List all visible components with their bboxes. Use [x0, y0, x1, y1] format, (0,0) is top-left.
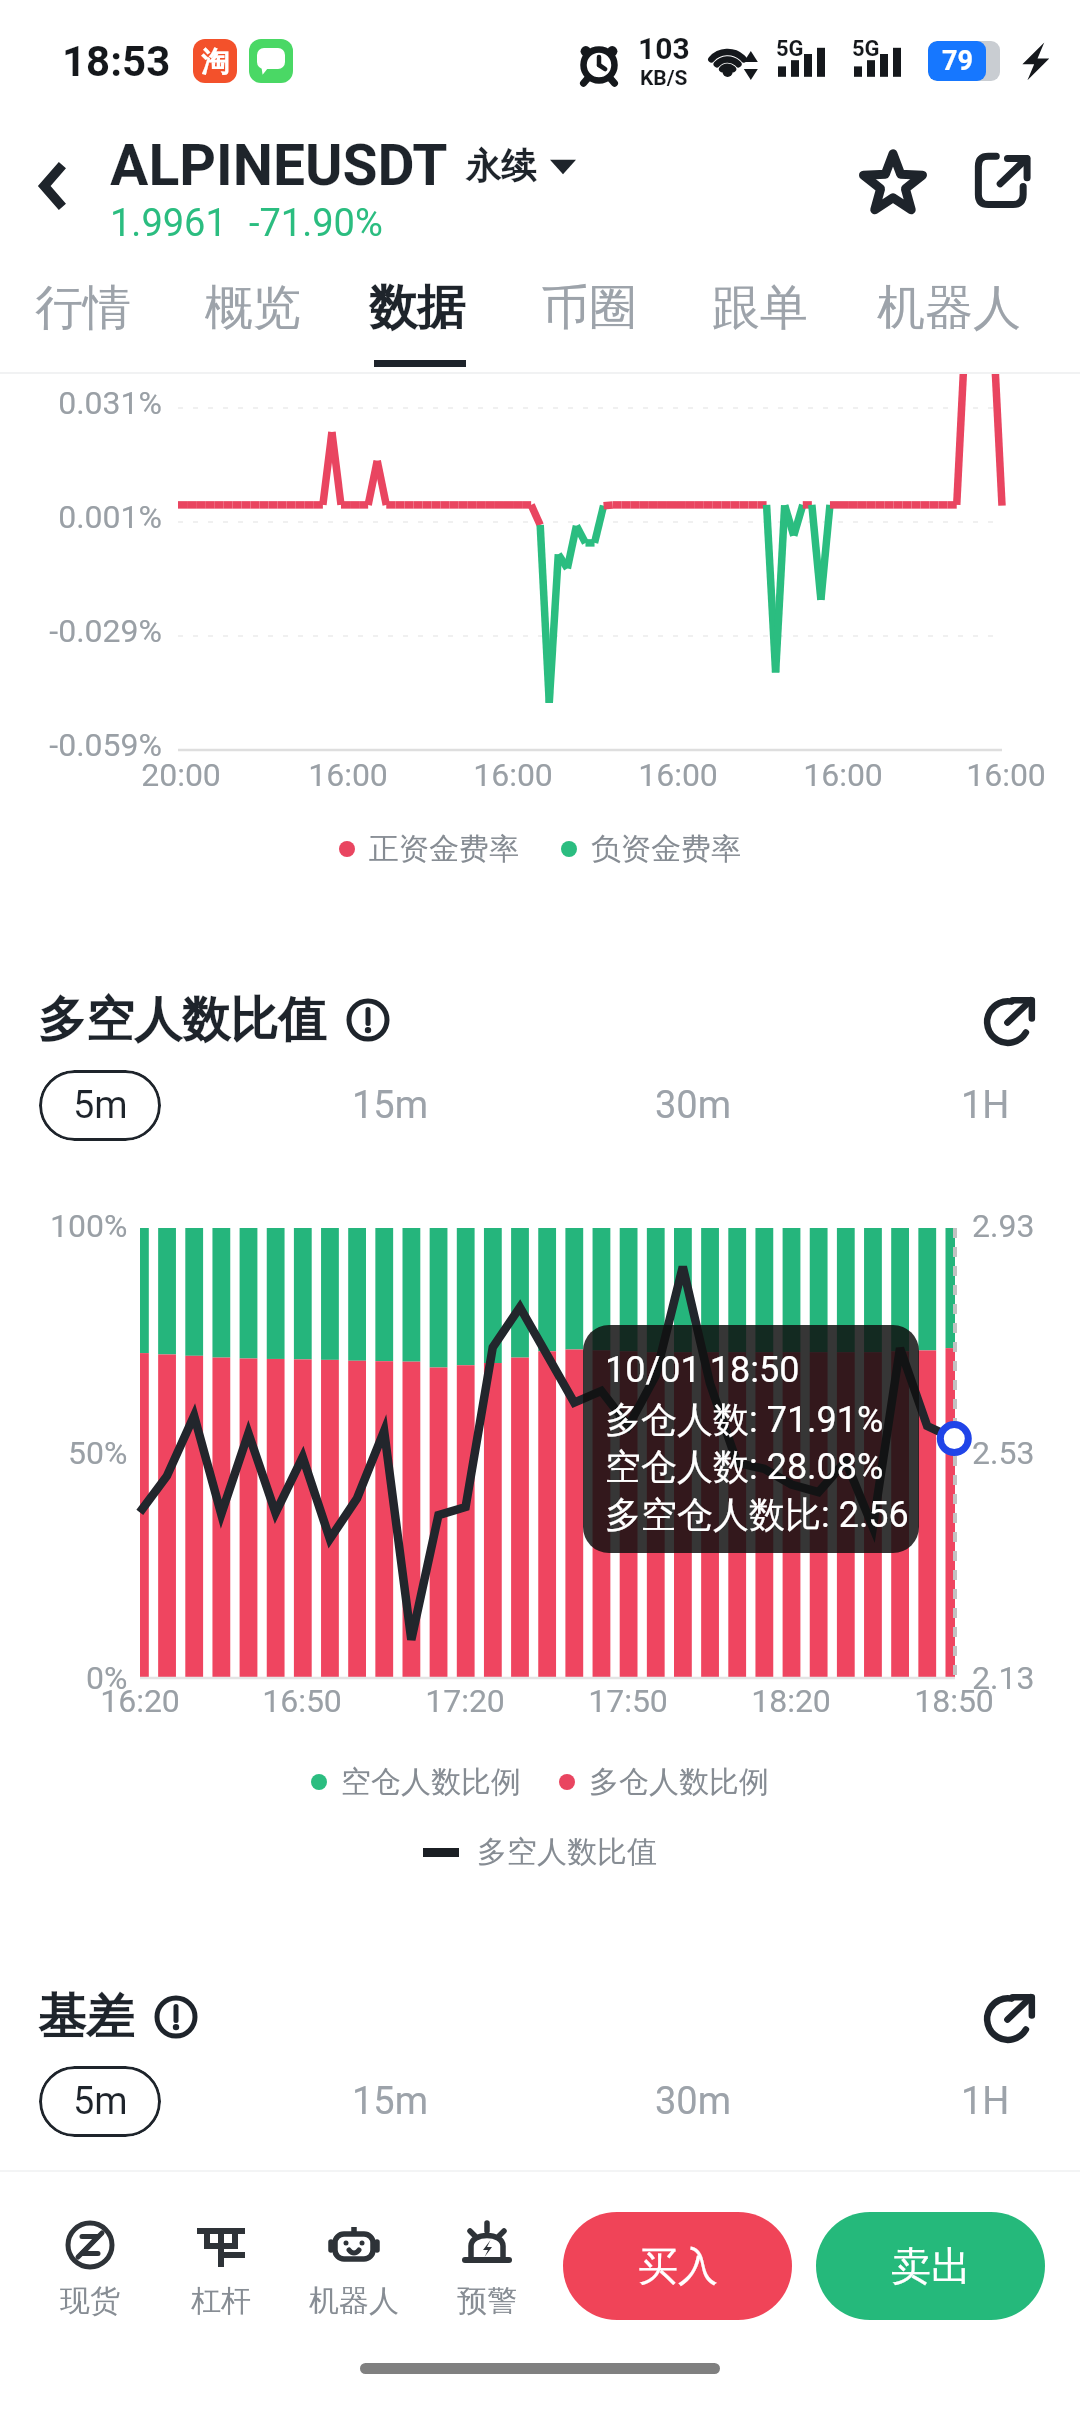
staticText: 多空仓人数比: 2.56 — [605, 1492, 909, 1537]
staticText: 概览 — [205, 278, 301, 338]
button[interactable]: 1H — [915, 1070, 1055, 1141]
button[interactable]: 1H — [915, 2066, 1055, 2137]
button[interactable]: 30m — [613, 2066, 773, 2137]
staticText: 淘 — [201, 44, 229, 79]
staticText: 5m — [73, 2079, 128, 2124]
staticText: 2.13 — [972, 1659, 1035, 1697]
button[interactable]: 卖出 — [816, 2212, 1045, 2320]
staticText: 16:50 — [262, 1682, 342, 1720]
staticText: 20:00 — [141, 756, 221, 794]
staticText: ALPINEUSDT — [110, 132, 448, 199]
button[interactable]: 5m — [39, 2066, 161, 2137]
staticText: 18:20 — [751, 1682, 831, 1720]
staticText: 17:50 — [588, 1682, 668, 1720]
button[interactable]: 机器人 — [284, 2220, 424, 2320]
button[interactable]: 币圈 — [533, 278, 645, 372]
staticText: 买入 — [638, 2241, 718, 2291]
staticText: 行情 — [35, 278, 131, 338]
staticText: 机器人 — [309, 2282, 399, 2320]
staticText: 多空人数比值 — [477, 1833, 657, 1871]
staticText: 2.53 — [972, 1434, 1035, 1472]
staticText: 多空人数比值 — [38, 990, 326, 1050]
staticText: 卖出 — [891, 2241, 971, 2291]
button[interactable]: 5m — [39, 1070, 161, 1141]
staticText: 18:53 — [62, 37, 171, 86]
staticText: 正资金费率 — [369, 830, 519, 868]
staticText: 2.93 — [972, 1207, 1035, 1245]
staticText: -0.059% — [49, 726, 162, 764]
staticText: 机器人 — [877, 278, 1021, 338]
staticText: 30m — [655, 2079, 732, 2124]
staticText: 15m — [352, 1083, 429, 1128]
staticText: 0% — [86, 1659, 128, 1697]
staticText: 30m — [655, 1083, 732, 1128]
staticText: 103 — [638, 31, 690, 66]
staticText: 跟单 — [712, 278, 808, 338]
staticText: 多仓人数: 71.91% — [605, 1397, 884, 1442]
button[interactable]: Back — [12, 146, 92, 226]
staticText: 16:00 — [308, 756, 388, 794]
staticText: 0.001% — [58, 498, 162, 536]
staticText: -71.90% — [249, 201, 383, 246]
staticText: 杠杆 — [191, 2282, 251, 2320]
staticText: 多仓人数比例 — [589, 1763, 769, 1801]
staticText: 空仓人数比例 — [341, 1763, 521, 1801]
staticText: 0.031% — [58, 384, 162, 422]
staticText: 1H — [961, 1083, 1010, 1128]
button[interactable]: 行情 — [27, 278, 139, 372]
staticText: 5G — [776, 36, 804, 62]
button[interactable]: 现货 — [20, 2220, 160, 2320]
button[interactable]: 数据 — [361, 278, 473, 372]
button[interactable]: Expand chart — [974, 984, 1046, 1056]
staticText: 16:20 — [100, 1682, 180, 1720]
staticText: 18:50 — [914, 1682, 994, 1720]
staticText: 79 — [942, 45, 973, 77]
staticText: 币圈 — [541, 278, 637, 338]
staticText: 基差 — [38, 1987, 134, 2047]
staticText: 现货 — [60, 2282, 120, 2320]
staticText: 16:00 — [803, 756, 883, 794]
button[interactable]: Favorite — [846, 134, 940, 228]
button[interactable]: 概览 — [197, 278, 309, 372]
staticText: 16:00 — [473, 756, 553, 794]
button[interactable]: 预警 — [417, 2220, 557, 2320]
staticText: 50% — [68, 1434, 128, 1472]
staticText: 15m — [352, 2079, 429, 2124]
staticText: KB/S — [640, 66, 688, 91]
staticText: 5G — [852, 36, 880, 62]
staticText: 17:20 — [425, 1682, 505, 1720]
button[interactable]: 15m — [310, 2066, 470, 2137]
staticText: 5m — [73, 1083, 128, 1128]
button[interactable]: 30m — [613, 1070, 773, 1141]
button[interactable]: 15m — [310, 1070, 470, 1141]
button[interactable]: 机器人 — [869, 278, 1029, 372]
button[interactable]: Expand chart — [974, 1981, 1046, 2053]
staticText: 1.9961 — [110, 201, 227, 246]
staticText: 空仓人数: 28.08% — [605, 1444, 884, 1489]
button[interactable]: 跟单 — [704, 278, 816, 372]
staticText: 负资金费率 — [591, 830, 741, 868]
staticText: 预警 — [457, 2282, 517, 2320]
staticText: 16:00 — [966, 756, 1046, 794]
staticText: 数据 — [369, 278, 465, 338]
button[interactable]: Share — [956, 134, 1050, 228]
button[interactable]: 杠杆 — [151, 2220, 291, 2320]
button[interactable]: 买入 — [563, 2212, 792, 2320]
staticText: 16:00 — [638, 756, 718, 794]
staticText: 永续 — [466, 144, 536, 188]
staticText: 100% — [50, 1207, 128, 1245]
staticText: 10/01 18:50 — [605, 1349, 800, 1391]
staticText: -0.029% — [49, 612, 162, 650]
staticText: 1H — [961, 2079, 1010, 2124]
